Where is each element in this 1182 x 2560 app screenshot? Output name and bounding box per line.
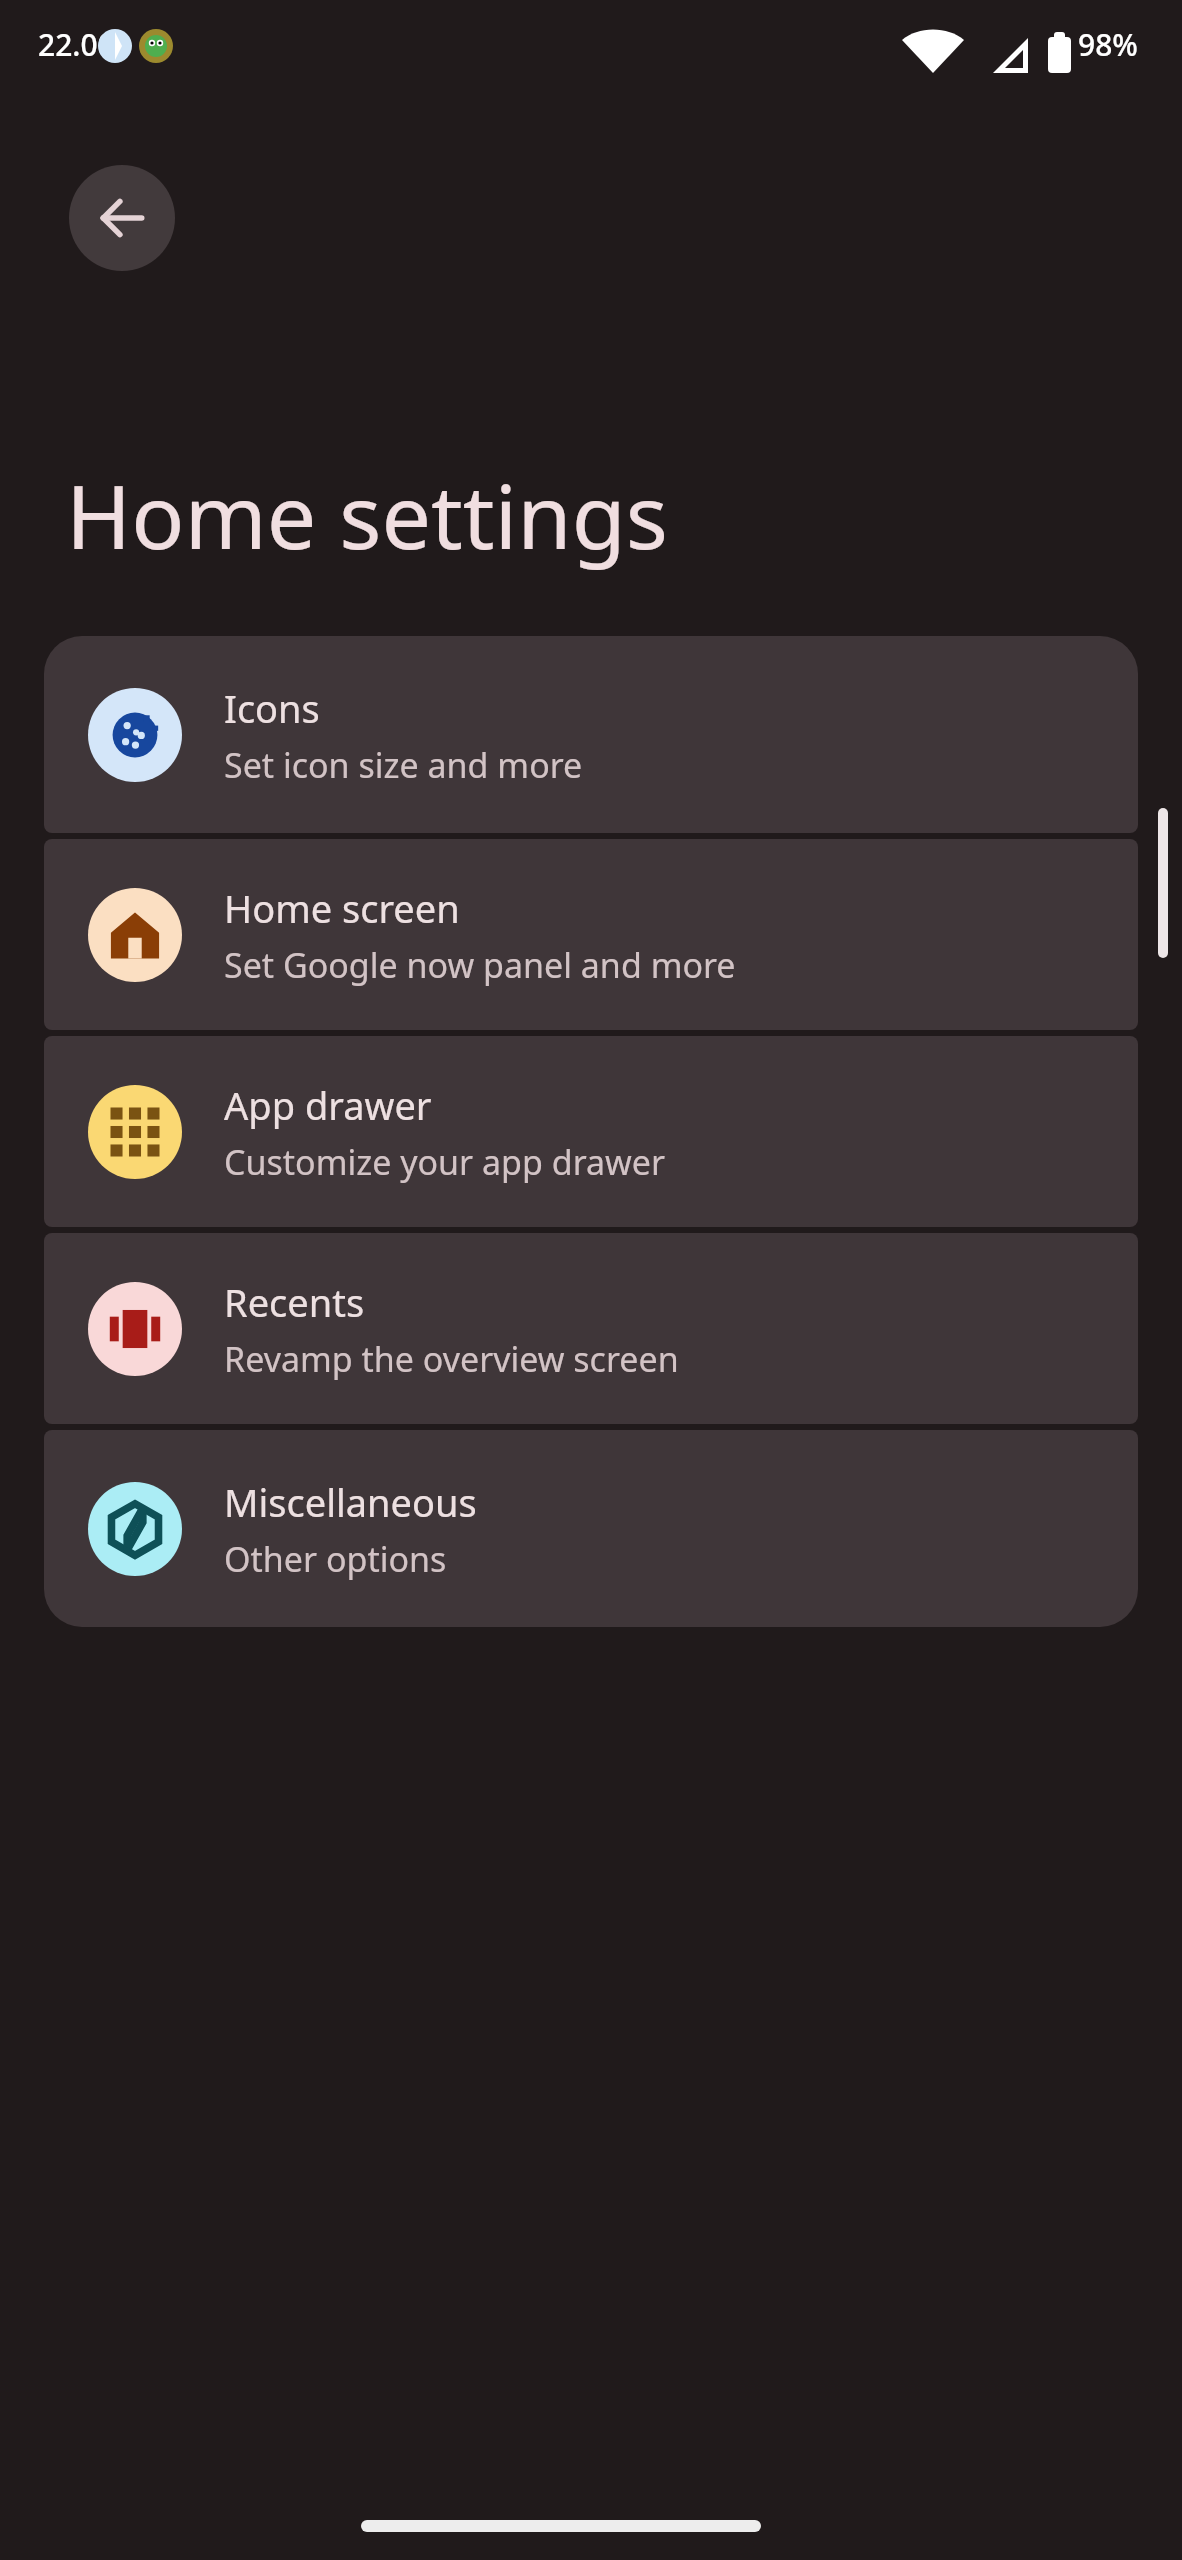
button[interactable]: Recents	[44, 1233, 1138, 1424]
button[interactable]: App drawer	[44, 1036, 1138, 1227]
staticText: Recents	[224, 1276, 365, 1328]
staticText: 22.00	[38, 24, 115, 65]
staticText: Other options	[224, 1536, 447, 1582]
staticText: App drawer	[224, 1079, 432, 1131]
staticText: Revamp the overview screen	[224, 1336, 679, 1382]
staticText: Set Google now panel and more	[224, 942, 736, 988]
button[interactable]: Home screen	[44, 839, 1138, 1030]
staticText: Icons	[224, 682, 320, 734]
staticText: 98%	[1078, 24, 1138, 65]
staticText: Set icon size and more	[224, 742, 583, 788]
staticText: Home screen	[224, 882, 460, 934]
button[interactable]: Back	[69, 165, 175, 271]
button[interactable]: Miscellaneous	[44, 1430, 1138, 1627]
button[interactable]: Icons	[44, 636, 1138, 833]
staticText: Miscellaneous	[224, 1476, 477, 1528]
staticText: Customize your app drawer	[224, 1139, 666, 1185]
staticText: Home settings	[66, 455, 668, 575]
